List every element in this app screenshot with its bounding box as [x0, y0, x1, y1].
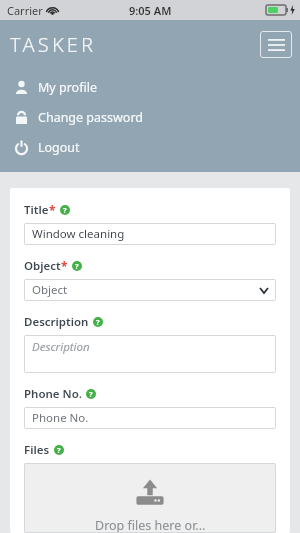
staticText: ? [89, 389, 93, 399]
staticText: Files [24, 442, 50, 458]
staticText: My profile [38, 79, 97, 96]
staticText: Logout [38, 139, 80, 156]
staticText: Title [24, 202, 49, 218]
staticText: Window cleaning [32, 226, 125, 242]
staticText: TASKER [10, 31, 97, 58]
button[interactable]: Change password [0, 102, 300, 132]
staticText: Description [24, 314, 89, 330]
staticText: Phone No. [24, 386, 82, 402]
staticText: 9:05 AM [129, 3, 172, 18]
button[interactable]: My profile [0, 72, 300, 102]
staticText: Object [24, 258, 61, 274]
staticText: Change password [38, 109, 144, 126]
staticText: Phone No. [32, 410, 89, 426]
button[interactable]: Drop files here [24, 463, 276, 533]
button[interactable]: Description [24, 335, 276, 373]
staticText: Description [32, 339, 90, 355]
staticText: Object [32, 282, 68, 298]
staticText: ? [57, 445, 61, 455]
button[interactable]: Window cleaning [24, 223, 276, 245]
staticText: Drop files here or... [95, 517, 206, 533]
staticText: * [49, 202, 56, 218]
button[interactable]: Help [60, 205, 70, 215]
button[interactable]: Help [72, 261, 82, 271]
staticText: ? [75, 261, 79, 271]
button[interactable]: Help [93, 317, 103, 327]
button[interactable]: Help [86, 389, 96, 399]
button[interactable]: Menu [260, 31, 292, 58]
button[interactable]: Logout [0, 132, 300, 162]
button[interactable]: Help [54, 445, 64, 455]
button[interactable]: Object [24, 279, 276, 301]
staticText: * [61, 258, 68, 274]
staticText: ? [96, 317, 100, 327]
staticText: Carrier [7, 3, 43, 18]
button[interactable]: Phone No. [24, 407, 276, 429]
staticText: ? [63, 205, 67, 215]
